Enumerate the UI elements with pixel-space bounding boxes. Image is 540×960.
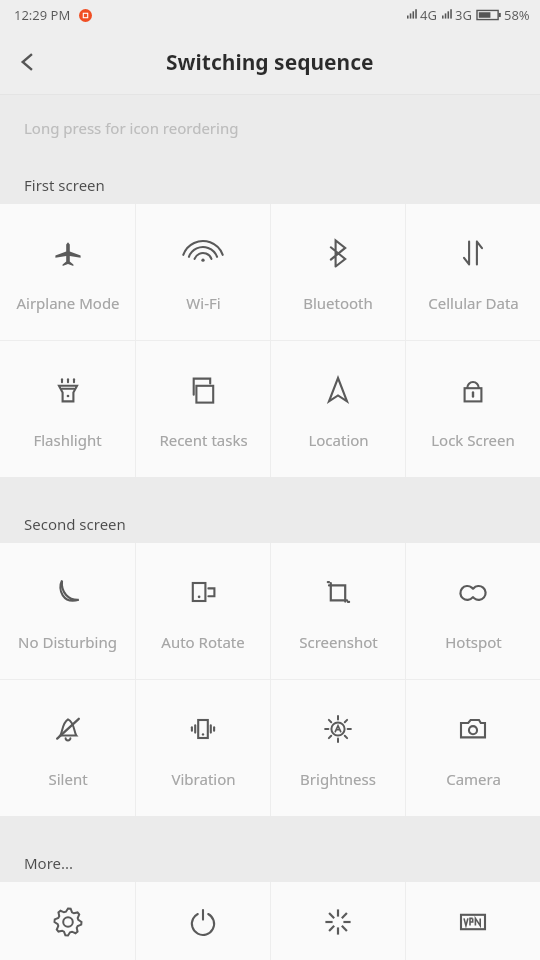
staticText: No Disturbing (18, 632, 117, 652)
staticText: Auto Rotate (161, 632, 245, 652)
button[interactable]: Silent (0, 680, 135, 816)
staticText: Wi-Fi (186, 293, 221, 313)
button[interactable]: Settings (0, 882, 135, 960)
button[interactable]: Screenshot (271, 543, 405, 679)
staticText: Brightness (300, 769, 376, 789)
button[interactable]: Bluetooth (271, 204, 405, 340)
staticText: Bluetooth (303, 293, 373, 313)
button[interactable]: Hotspot (406, 543, 540, 679)
staticText: 58% (504, 6, 530, 24)
staticText: First screen (24, 175, 105, 195)
button[interactable]: Recent tasks (136, 341, 270, 477)
staticText: Long press for icon reordering (24, 118, 239, 138)
staticText: Airplane Mode (16, 293, 120, 313)
staticText: Flashlight (33, 430, 102, 450)
staticText: Screenshot (299, 632, 378, 652)
button[interactable]: VPN (406, 882, 540, 960)
button[interactable]: Auto Rotate (136, 543, 270, 679)
button[interactable]: Wi-Fi (136, 204, 270, 340)
staticText: Switching sequence (166, 48, 374, 77)
staticText: Silent (48, 769, 88, 789)
button[interactable]: Back (0, 34, 56, 90)
staticText: More... (24, 853, 74, 873)
button[interactable]: Vibration (136, 680, 270, 816)
staticText: Cellular Data (428, 293, 519, 313)
staticText: Lock Screen (431, 430, 515, 450)
button[interactable]: Brightness (271, 680, 405, 816)
button[interactable]: Flashlight (0, 341, 135, 477)
button[interactable]: Power (136, 882, 270, 960)
button[interactable]: No Disturbing (0, 543, 135, 679)
staticText: 3G (455, 6, 472, 24)
staticText: Location (308, 430, 369, 450)
button[interactable]: Cellular Data (406, 204, 540, 340)
button[interactable]: Location (271, 341, 405, 477)
staticText: Hotspot (445, 632, 502, 652)
staticText: Recent tasks (159, 430, 248, 450)
staticText: Camera (446, 769, 501, 789)
staticText: Vibration (171, 769, 236, 789)
button[interactable]: Lock Screen (406, 341, 540, 477)
staticText: 12:29 PM (14, 6, 71, 24)
button[interactable]: Airplane Mode (0, 204, 135, 340)
staticText: 4G (420, 6, 437, 24)
staticText: Second screen (24, 514, 126, 534)
button[interactable]: Sync (271, 882, 405, 960)
button[interactable]: Camera (406, 680, 540, 816)
